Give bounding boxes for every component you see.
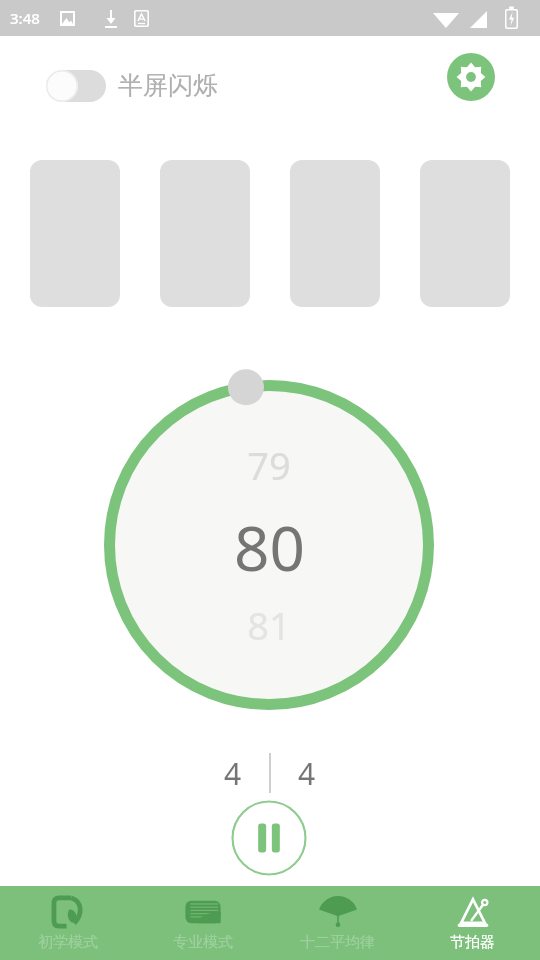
staticText: 十二平均律 — [300, 933, 375, 952]
button[interactable]: 十二平均律 — [270, 886, 405, 960]
staticText: 半屏闪烁 — [118, 70, 218, 101]
button[interactable]: Beat — [160, 160, 250, 307]
button[interactable]: 初学模式 — [0, 886, 135, 960]
button[interactable]: Beat — [420, 160, 510, 307]
button[interactable]: 节拍器 — [405, 886, 540, 960]
button[interactable]: Beat — [290, 160, 380, 307]
button[interactable]: Tempo dial — [104, 365, 434, 695]
staticText: 81 — [247, 599, 291, 651]
button[interactable]: Settings — [447, 53, 495, 101]
button[interactable]: Beat — [30, 160, 120, 307]
staticText: 节拍器 — [450, 933, 495, 952]
staticText: 4 — [224, 753, 242, 794]
button[interactable]: 4 — [271, 752, 343, 794]
button[interactable]: 4 — [197, 752, 269, 794]
button[interactable]: Half screen flash toggle — [46, 68, 106, 104]
button[interactable]: 专业模式 — [135, 886, 270, 960]
staticText: 80 — [234, 505, 305, 589]
staticText: 79 — [247, 439, 291, 491]
staticText: 3:48 — [10, 8, 40, 28]
staticText: 初学模式 — [38, 933, 98, 952]
staticText: 4 — [298, 753, 316, 794]
button[interactable]: Pause — [231, 800, 307, 876]
staticText: 专业模式 — [173, 933, 233, 952]
